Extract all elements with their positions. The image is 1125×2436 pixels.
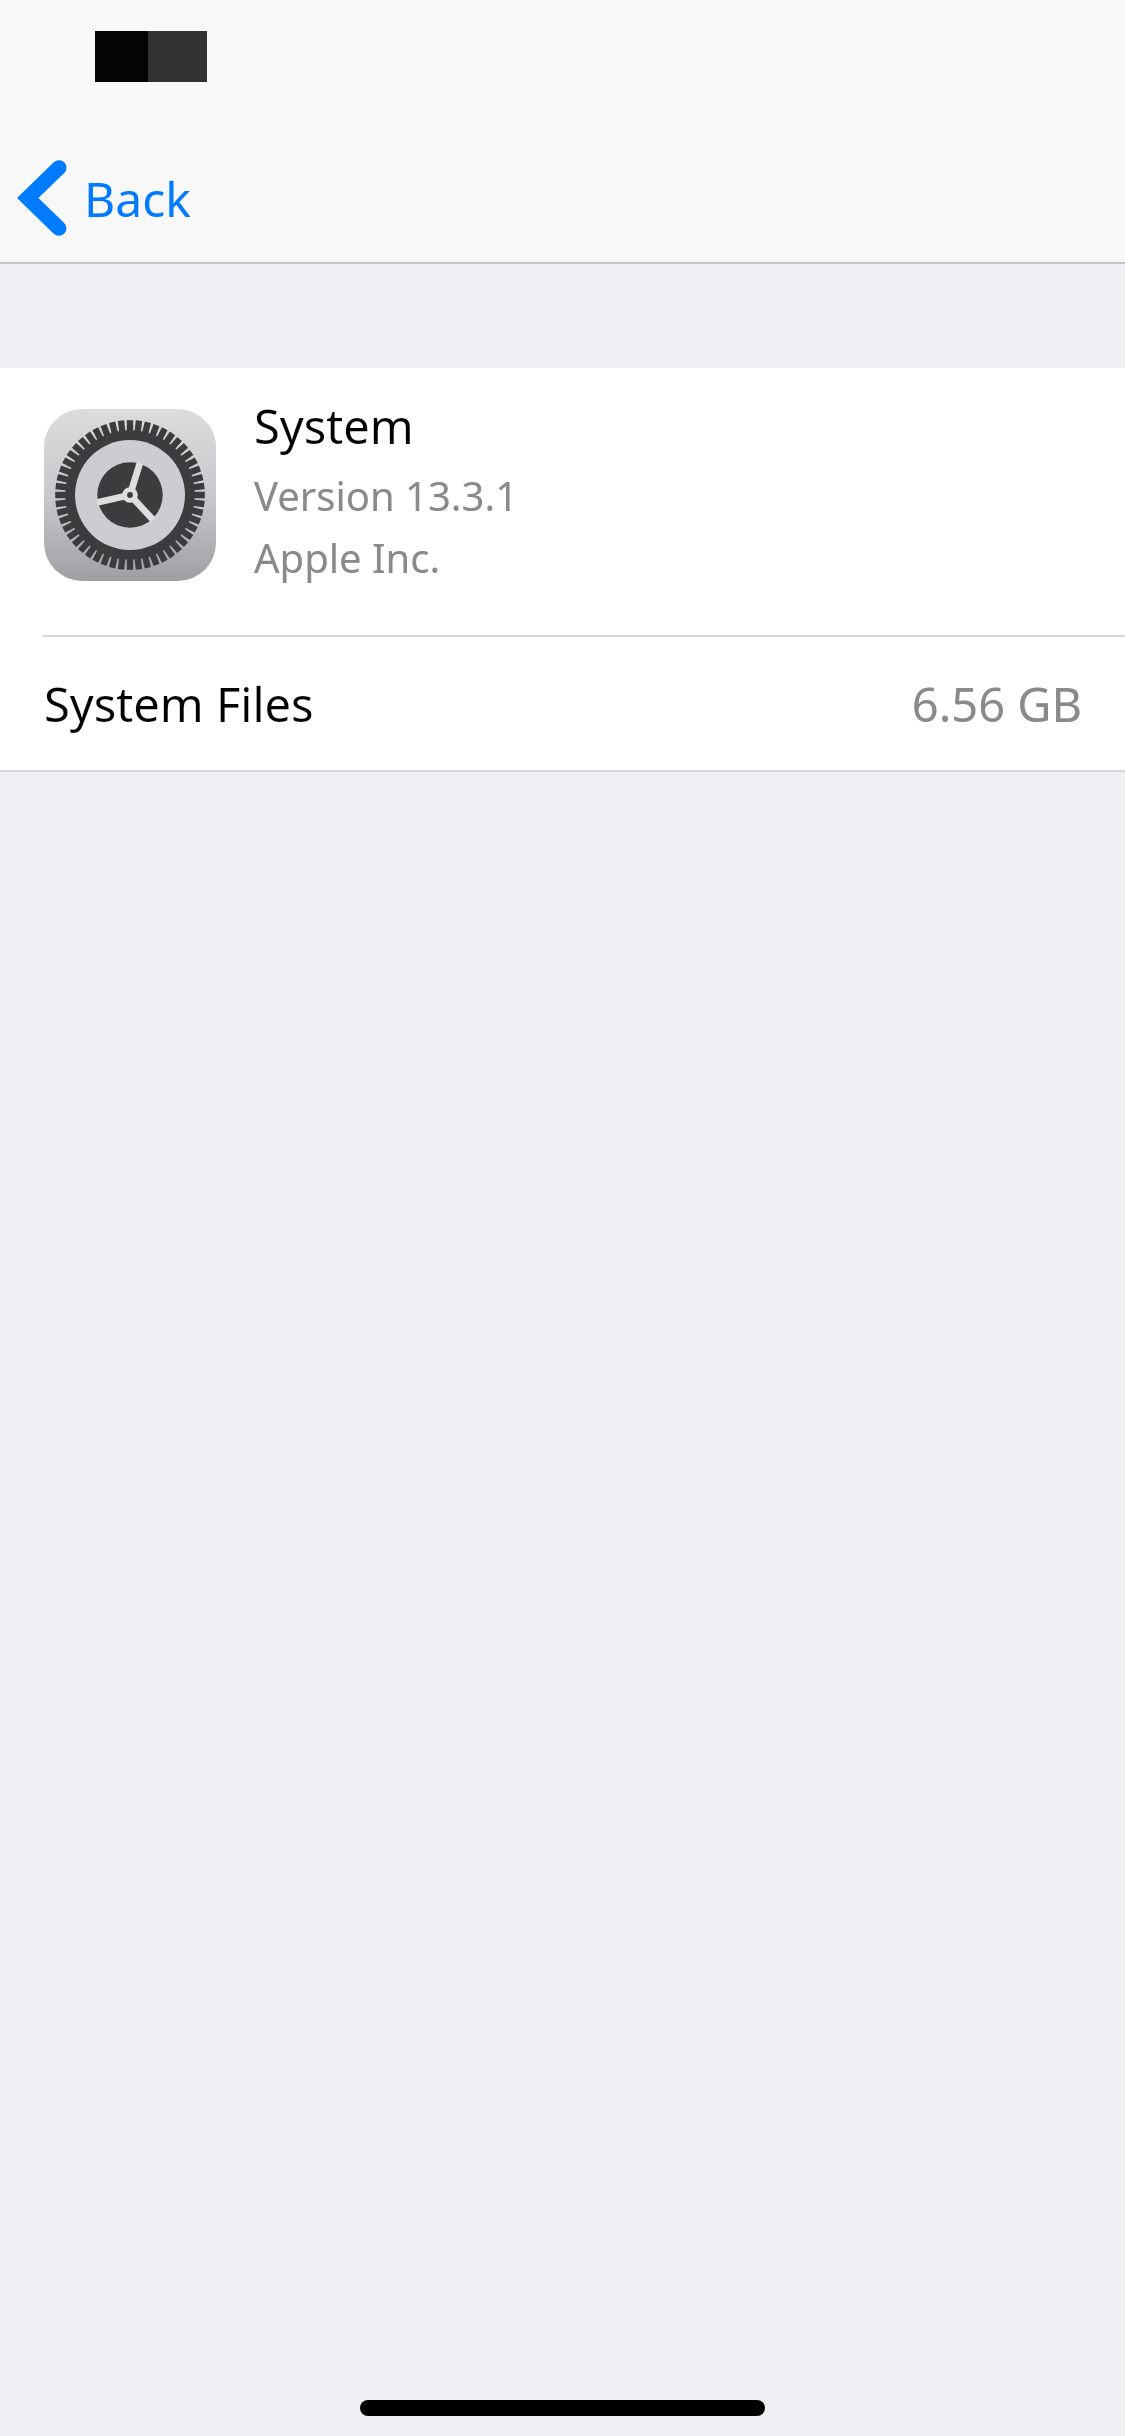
button[interactable]: System: [0, 368, 1125, 635]
staticText: Back: [84, 166, 191, 231]
staticText: 6.56 GB: [911, 672, 1082, 736]
staticText: Version 13.3.1: [254, 468, 519, 522]
staticText: Apple Inc.: [254, 530, 441, 584]
button[interactable]: System Files: [0, 637, 1125, 770]
button[interactable]: Back: [10, 150, 211, 246]
staticText: System Files: [44, 672, 314, 736]
staticText: System: [254, 394, 414, 458]
